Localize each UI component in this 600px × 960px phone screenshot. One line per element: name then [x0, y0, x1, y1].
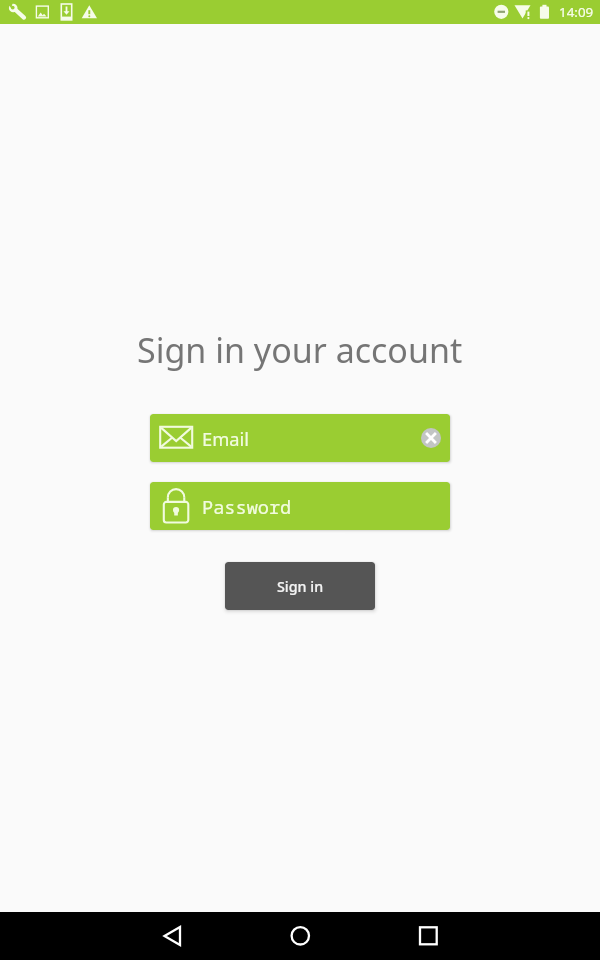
button[interactable]: Home: [250, 912, 350, 960]
button[interactable]: Password: [150, 482, 450, 530]
button[interactable]: Back: [122, 912, 222, 960]
button[interactable]: Recent apps: [378, 912, 478, 960]
staticText: Sign in your account: [137, 327, 463, 373]
staticText: 14:09: [559, 3, 594, 21]
button[interactable]: Email: [150, 414, 450, 462]
staticText: Email: [202, 426, 249, 451]
staticText: Password: [202, 494, 292, 519]
button[interactable]: Sign in: [225, 562, 375, 610]
staticText: Sign in: [277, 577, 324, 596]
button[interactable]: Clear text: [421, 428, 441, 448]
